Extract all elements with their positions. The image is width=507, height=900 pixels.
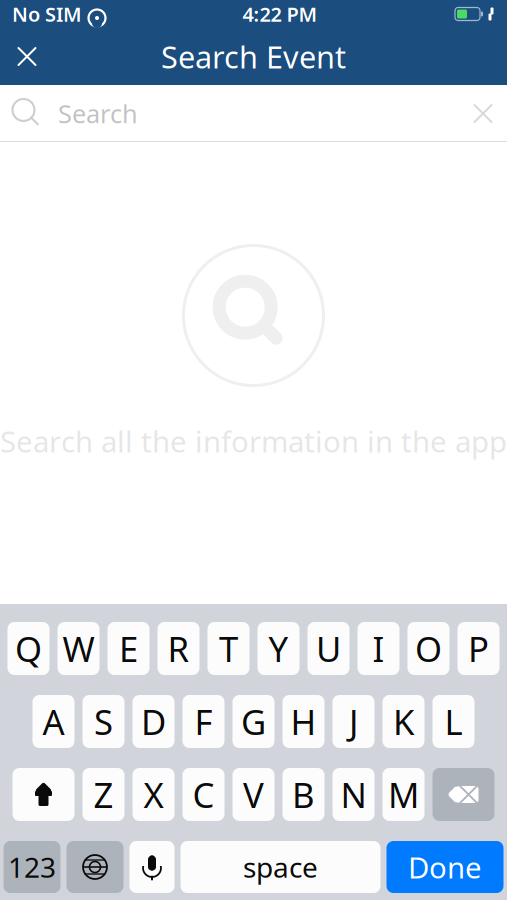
button[interactable]: F (182, 695, 224, 748)
button[interactable]: L (432, 695, 474, 748)
staticText: V (243, 771, 264, 817)
staticText: Search (58, 97, 138, 130)
staticText: J (349, 698, 358, 744)
staticText: C (192, 771, 214, 817)
staticText: W (62, 625, 94, 671)
button[interactable]: S (82, 695, 124, 748)
staticText: E (119, 625, 138, 671)
staticText: H (290, 698, 316, 744)
staticText: O (415, 625, 442, 671)
button[interactable]: Q (7, 622, 49, 675)
staticText: P (468, 625, 489, 671)
button[interactable]: C (182, 768, 224, 821)
staticText: Z (93, 771, 113, 817)
button[interactable]: G (232, 695, 274, 748)
staticText: No SIM (12, 1, 82, 27)
staticText: Search all the information in the app (0, 421, 507, 460)
button[interactable]: P (457, 622, 499, 675)
staticText: I (372, 625, 384, 671)
button[interactable]: Dictation (129, 841, 174, 893)
staticText: X (143, 771, 163, 817)
staticText: L (444, 698, 462, 744)
staticText: B (292, 771, 315, 817)
staticText: K (393, 698, 414, 744)
button[interactable]: Clear search (459, 91, 507, 135)
staticText: M (388, 771, 419, 817)
button[interactable]: X (132, 768, 174, 821)
button[interactable]: 123 (3, 841, 60, 893)
button[interactable]: N (332, 768, 374, 821)
button[interactable]: W (57, 622, 99, 675)
button[interactable]: Shift (12, 768, 74, 821)
button[interactable]: Next keyboard (66, 841, 123, 893)
staticText: G (241, 698, 266, 744)
button[interactable]: R (157, 622, 199, 675)
button[interactable]: V (232, 768, 274, 821)
button[interactable]: I (357, 622, 399, 675)
button[interactable]: space (180, 841, 380, 893)
staticText: N (340, 771, 366, 817)
button[interactable]: B (282, 768, 324, 821)
staticText: F (194, 698, 212, 744)
staticText: A (42, 698, 64, 744)
button[interactable]: Close (0, 33, 54, 79)
button[interactable]: J (332, 695, 374, 748)
staticText: Q (15, 625, 42, 671)
staticText: 4:22 PM (242, 1, 317, 27)
button[interactable]: Z (82, 768, 124, 821)
staticText: Y (268, 625, 288, 671)
button[interactable]: M (382, 768, 424, 821)
staticText: Done (408, 847, 482, 886)
button[interactable]: T (207, 622, 249, 675)
button[interactable]: K (382, 695, 424, 748)
staticText: S (94, 698, 113, 744)
staticText: Search Event (161, 36, 346, 77)
staticText: R (167, 625, 189, 671)
button[interactable]: D (132, 695, 174, 748)
button[interactable]: Y (257, 622, 299, 675)
staticText: space (243, 848, 318, 886)
button[interactable]: Delete (432, 768, 494, 821)
button[interactable]: A (32, 695, 74, 748)
button[interactable]: U (307, 622, 349, 675)
button[interactable]: O (407, 622, 449, 675)
button[interactable]: H (282, 695, 324, 748)
staticText: D (141, 698, 166, 744)
button[interactable]: E (107, 622, 149, 675)
button[interactable]: Done (386, 841, 503, 893)
staticText: T (219, 625, 238, 671)
staticText: U (316, 625, 341, 671)
staticText: 123 (8, 848, 56, 886)
